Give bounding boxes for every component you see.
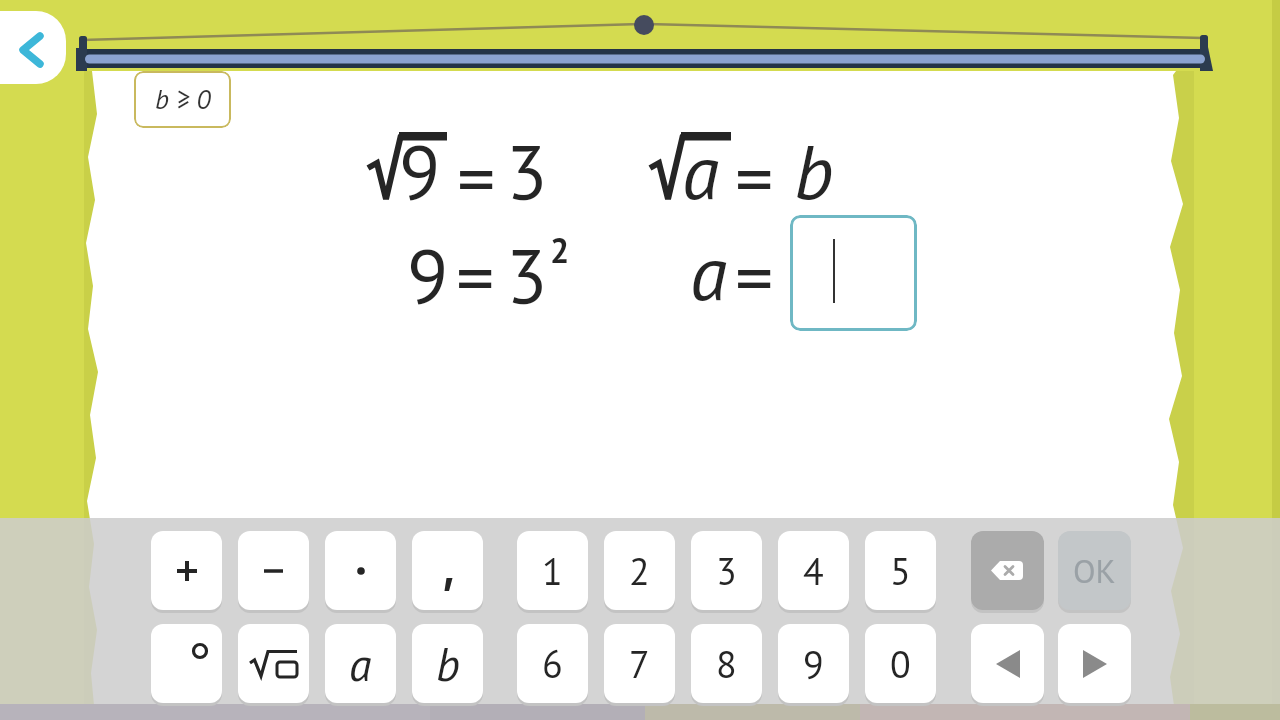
button[interactable]: 6	[517, 624, 588, 703]
button[interactable]	[790, 215, 917, 331]
button[interactable]	[325, 531, 396, 610]
staticText: 2	[550, 228, 570, 272]
staticText: 9	[407, 226, 449, 324]
staticText: 1	[542, 546, 563, 595]
staticText: 7	[629, 639, 650, 688]
staticText: OK	[1073, 549, 1116, 592]
staticText: 5	[890, 546, 911, 595]
button[interactable]: 7	[604, 624, 675, 703]
staticText: 3	[506, 122, 548, 220]
staticText: b ≥ 0	[155, 82, 211, 117]
staticText: 4	[803, 546, 824, 595]
staticText: =	[735, 228, 774, 326]
staticText: a	[682, 122, 720, 220]
staticText: 0	[890, 639, 911, 688]
button[interactable]	[0, 11, 66, 84]
button[interactable]	[412, 531, 483, 610]
button[interactable]: a	[325, 624, 396, 703]
button[interactable]	[238, 624, 309, 703]
button[interactable]: 3	[691, 531, 762, 610]
button[interactable]: 2	[604, 531, 675, 610]
staticText: a	[690, 223, 728, 321]
staticText: 8	[716, 639, 737, 688]
button[interactable]	[151, 624, 222, 703]
staticText: b	[794, 122, 834, 220]
button[interactable]: 5	[865, 531, 936, 610]
button[interactable]	[238, 531, 309, 610]
button[interactable]: 9	[778, 624, 849, 703]
staticText: 3	[716, 546, 737, 595]
staticText: 6	[542, 639, 563, 688]
staticText: b	[436, 634, 460, 694]
staticText: a	[349, 634, 372, 694]
staticText: =	[456, 228, 495, 326]
staticText: =	[457, 129, 496, 227]
button[interactable]	[971, 531, 1044, 610]
button[interactable]: b	[412, 624, 483, 703]
staticText: 9	[803, 639, 824, 688]
staticText: =	[735, 129, 774, 227]
staticText: 9	[399, 122, 441, 220]
button[interactable]: 8	[691, 624, 762, 703]
staticText: 3	[506, 226, 548, 324]
staticText: 2	[629, 546, 650, 595]
button[interactable]: 0	[865, 624, 936, 703]
button[interactable]	[971, 624, 1044, 703]
button[interactable]	[1058, 624, 1131, 703]
button[interactable]: OK	[1058, 531, 1131, 610]
button[interactable]: 4	[778, 531, 849, 610]
button[interactable]: 1	[517, 531, 588, 610]
button[interactable]	[151, 531, 222, 610]
